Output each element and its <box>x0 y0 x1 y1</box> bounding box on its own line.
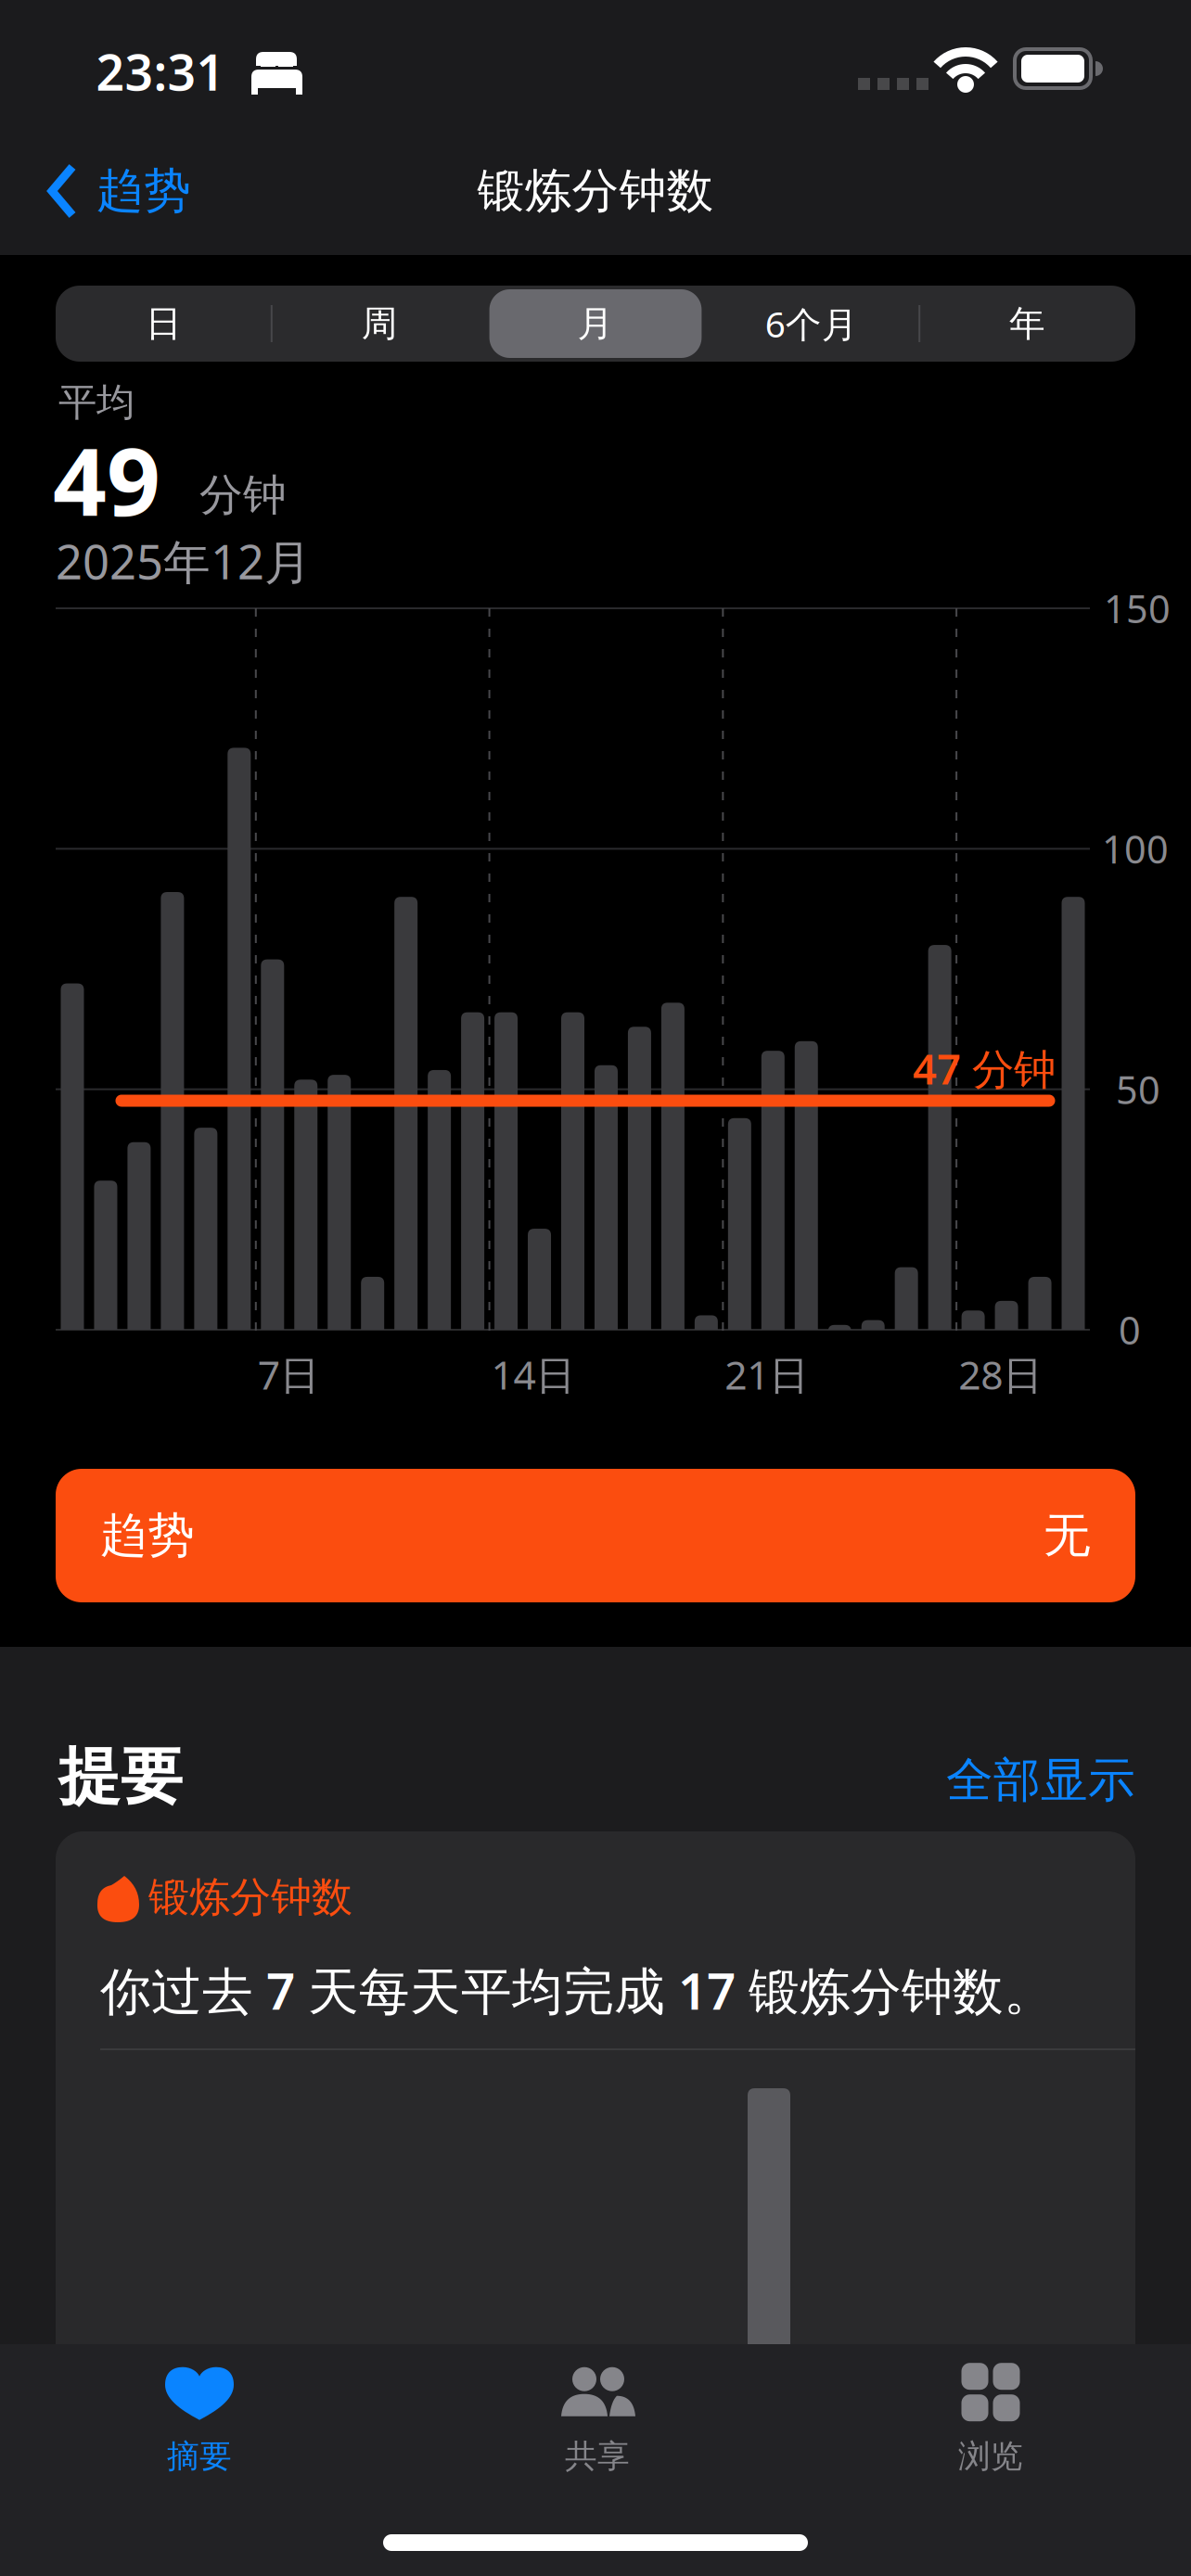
staticText: 全部显示 <box>946 1752 1135 1809</box>
button[interactable]: 摘要 <box>88 2350 311 2489</box>
staticText: 趋势 <box>100 1507 195 1564</box>
button[interactable]: 返回趋势 <box>37 154 204 228</box>
staticText: 平均 <box>58 379 134 426</box>
button[interactable]: 浏览 <box>879 2350 1102 2489</box>
staticText: 提要 <box>58 1739 183 1815</box>
staticText: 摘要 <box>167 2437 232 2476</box>
staticText: 分钟 <box>199 469 287 522</box>
staticText: 你过去 7 天每天平均完成 17 锻炼分钟数。 <box>100 1956 1055 2024</box>
staticText: 28日 <box>958 1348 1043 1401</box>
button[interactable]: 锻炼分钟数提要 <box>56 1831 1135 2409</box>
button[interactable]: 趋势 <box>56 1469 1135 1602</box>
staticText: 14日 <box>491 1348 576 1401</box>
staticText: 0 <box>1119 1304 1141 1355</box>
staticText: 周 <box>361 302 398 346</box>
staticText: 47 分钟 <box>913 1040 1056 1096</box>
staticText: 50 <box>1116 1064 1160 1115</box>
button[interactable]: 月 <box>488 286 703 362</box>
staticText: 年 <box>1009 302 1045 346</box>
staticText: 49 <box>53 417 160 542</box>
button[interactable]: 日 <box>56 286 272 362</box>
staticText: 无 <box>1044 1507 1091 1564</box>
staticText: 日 <box>146 302 182 346</box>
staticText: 23:31 <box>96 39 225 104</box>
button[interactable]: 全部显示 <box>857 1752 1135 1809</box>
staticText: 6个月 <box>765 300 858 347</box>
staticText: 浏览 <box>958 2437 1023 2476</box>
staticText: 锻炼分钟数 <box>148 1872 352 1922</box>
staticText: 锻炼分钟数 <box>477 162 714 220</box>
button[interactable]: 共享 <box>486 2350 709 2489</box>
staticText: 21日 <box>725 1348 809 1401</box>
button[interactable]: 周 <box>272 286 488 362</box>
staticText: 共享 <box>565 2437 630 2476</box>
button[interactable]: 6个月 <box>703 286 919 362</box>
staticText: 100 <box>1102 823 1169 874</box>
button[interactable]: 年 <box>919 286 1135 362</box>
staticText: 月 <box>577 302 614 346</box>
staticText: 2025年12月 <box>56 530 312 592</box>
staticText: 趋势 <box>96 162 191 220</box>
staticText: 7日 <box>258 1348 320 1401</box>
staticText: 150 <box>1104 583 1171 634</box>
